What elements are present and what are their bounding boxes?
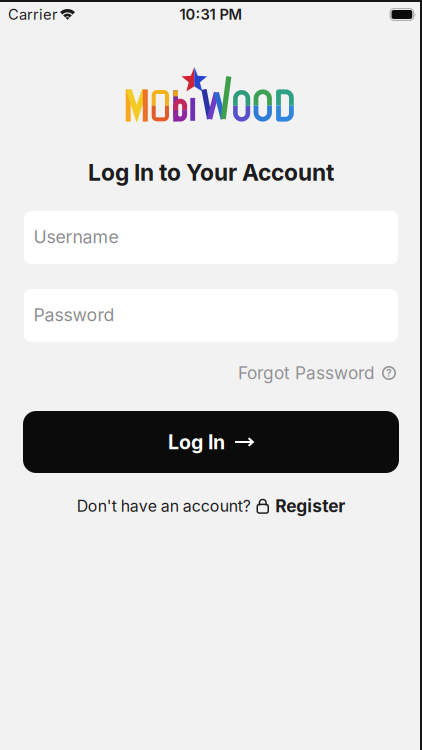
staticText: 10:31 PM bbox=[179, 6, 242, 23]
button[interactable]: Forgot Password bbox=[238, 363, 396, 383]
staticText: Carrier bbox=[8, 6, 58, 23]
staticText: Log In to Your Account bbox=[88, 159, 334, 186]
staticText: ? bbox=[386, 367, 392, 379]
staticText: Forgot Password bbox=[238, 363, 375, 383]
staticText: Username bbox=[33, 226, 118, 247]
button[interactable]: Don't have an account? bbox=[77, 495, 345, 516]
button[interactable]: Log In bbox=[23, 411, 399, 473]
textField[interactable]: Username bbox=[24, 222, 398, 252]
staticText: Don't have an account? bbox=[77, 496, 251, 516]
staticText: Register bbox=[275, 495, 345, 516]
staticText: Password bbox=[33, 304, 114, 325]
secureTextField[interactable]: Password bbox=[24, 300, 398, 330]
staticText: Log In bbox=[168, 430, 225, 454]
